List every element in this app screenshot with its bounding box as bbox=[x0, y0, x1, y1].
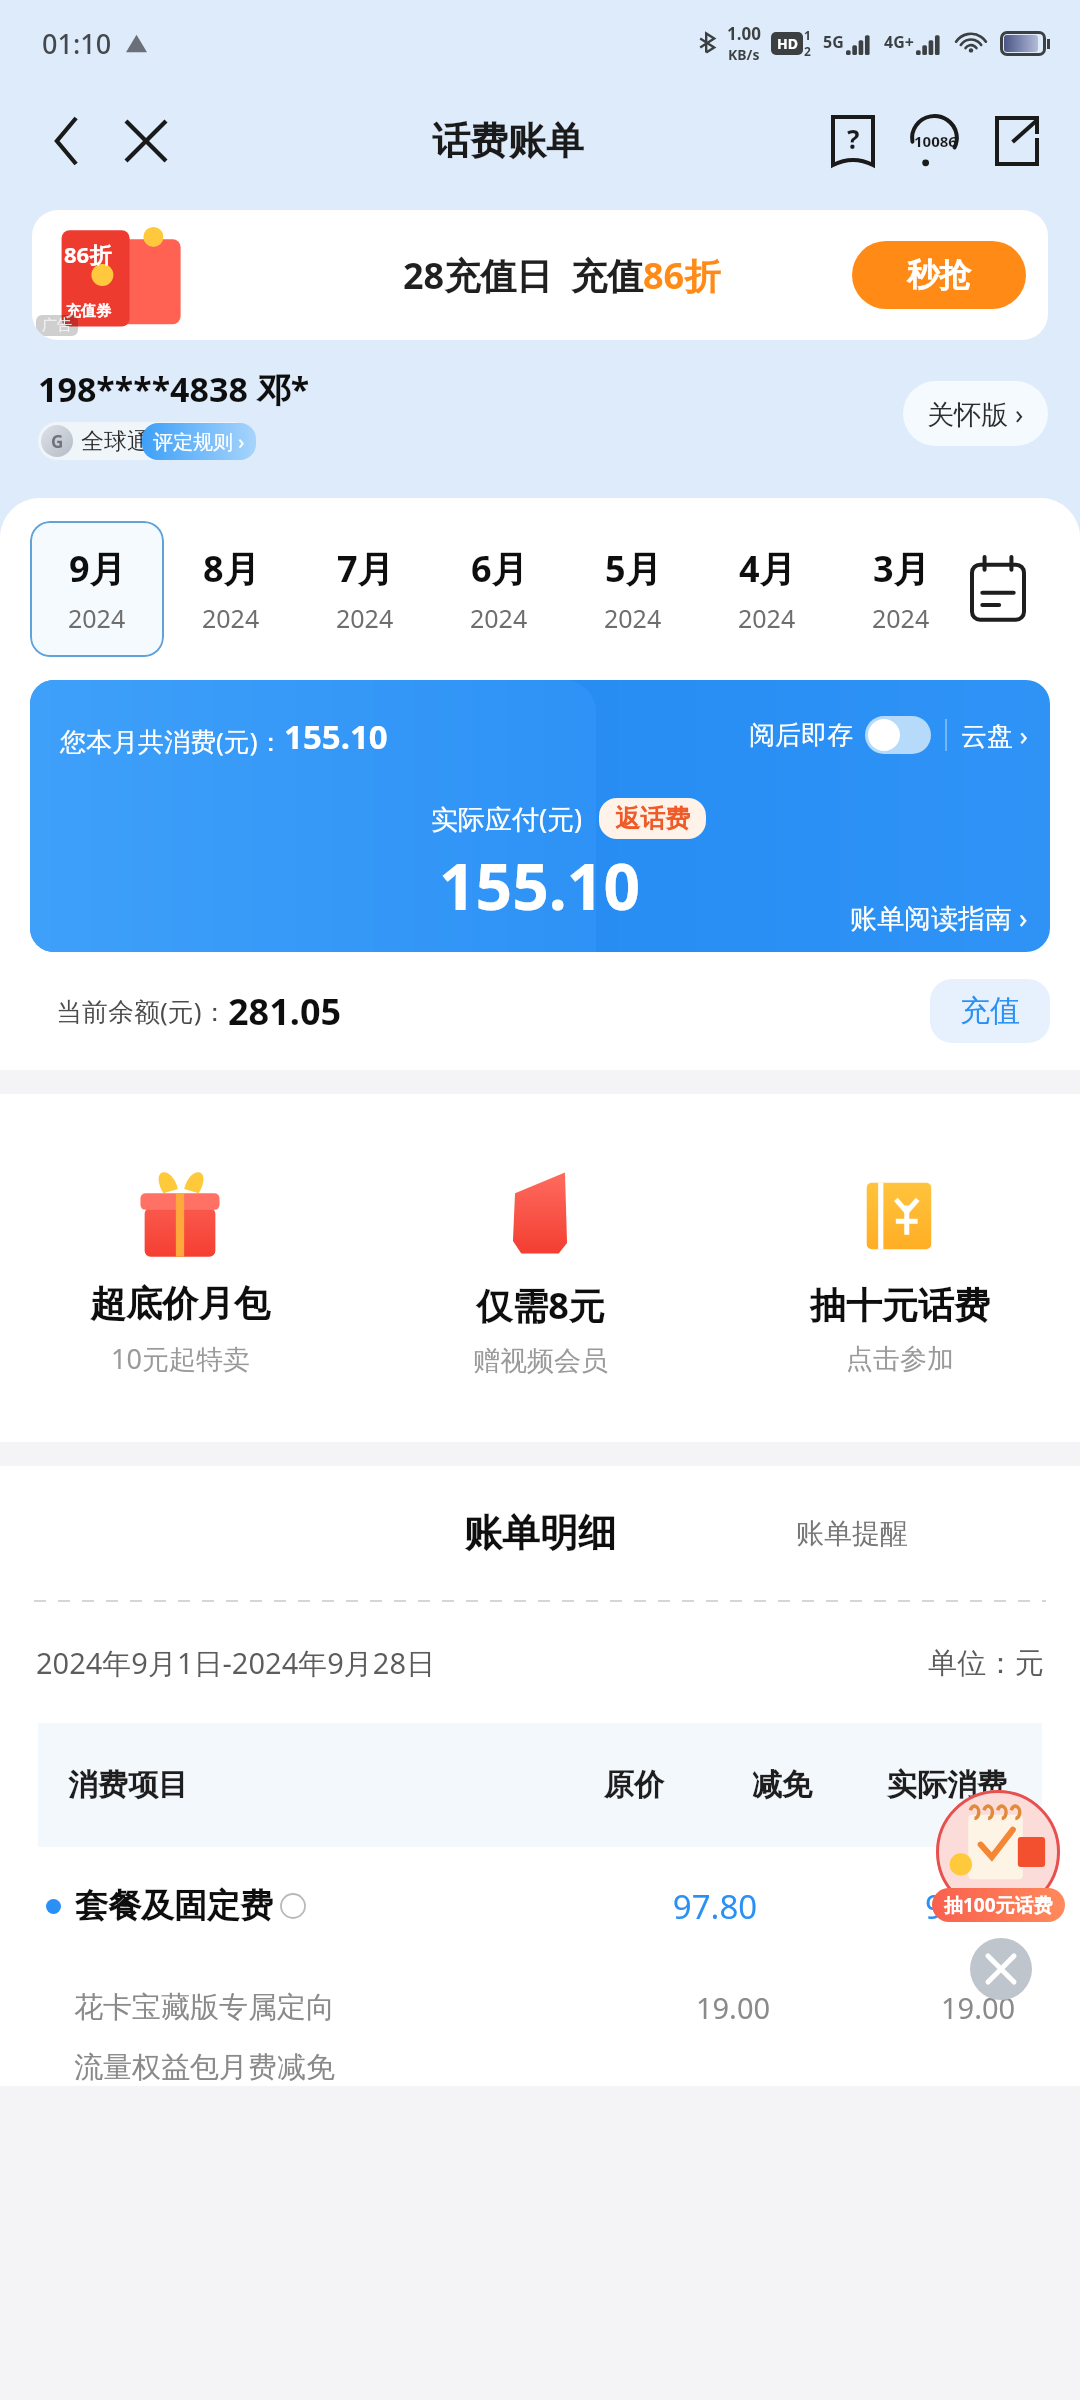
staticText: 阅后即存 bbox=[749, 719, 853, 752]
staticText: 2024 bbox=[202, 601, 260, 635]
staticText: 广告 bbox=[42, 316, 72, 335]
staticText: 9月 bbox=[69, 544, 126, 593]
button[interactable]: 秒抢 bbox=[852, 241, 1026, 309]
button[interactable]: 仅需8元 bbox=[360, 1159, 720, 1378]
staticText: 当前余额(元)： bbox=[56, 993, 228, 1029]
staticText: 2024 bbox=[470, 601, 528, 635]
button[interactable]: 86折 bbox=[32, 210, 1048, 340]
staticText: 2024 bbox=[604, 601, 662, 635]
staticText: 关怀版 › bbox=[927, 395, 1024, 432]
staticText: 3月 bbox=[873, 544, 930, 593]
staticText: 消费项目 bbox=[68, 1766, 556, 1804]
staticText: KB/s bbox=[728, 45, 760, 64]
staticText: 10086 bbox=[914, 131, 957, 151]
button[interactable]: Help bbox=[812, 100, 894, 182]
staticText: 评定规则 › bbox=[153, 428, 245, 455]
button[interactable]: 7月 bbox=[298, 521, 432, 657]
staticText: 超底价月包 bbox=[90, 1281, 270, 1326]
button[interactable]: 5月 bbox=[566, 521, 700, 657]
staticText: ? bbox=[847, 121, 860, 156]
button[interactable]: Close promotion bbox=[970, 1938, 1032, 2000]
staticText: 赠视频会员 bbox=[473, 1344, 608, 1378]
button[interactable]: Call 10086 bbox=[894, 100, 976, 182]
staticText: 198****4838 邓* bbox=[38, 366, 310, 412]
button[interactable]: Close bbox=[106, 101, 186, 181]
staticText: 155.10 bbox=[439, 842, 641, 929]
staticText: 实际应付(元) bbox=[431, 800, 583, 837]
staticText: 抽100元话费 bbox=[944, 1892, 1053, 1918]
staticText: 账单阅读指南 › bbox=[850, 899, 1028, 936]
button[interactable]: 4月 bbox=[700, 521, 834, 657]
staticText: 97.80 bbox=[925, 1884, 1010, 1929]
staticText: 秒抢 bbox=[907, 255, 971, 295]
button[interactable]: Draw 100 yuan bbox=[936, 1790, 1060, 1914]
staticText: 流量权益包月费减免 bbox=[74, 2049, 335, 2086]
button[interactable]: 6月 bbox=[432, 521, 566, 657]
staticText: 套餐及固定费 bbox=[75, 1885, 273, 1927]
button[interactable]: 账单阅读指南 › bbox=[850, 899, 1028, 936]
staticText: 实际消费 bbox=[852, 1766, 1042, 1804]
staticText: HD bbox=[777, 34, 798, 53]
staticText: 5G bbox=[823, 31, 844, 53]
button[interactable]: 抽十元话费 bbox=[720, 1161, 1080, 1376]
staticText: 抽十元话费 bbox=[810, 1283, 990, 1328]
button[interactable]: Auto save toggle bbox=[865, 716, 931, 754]
staticText: G bbox=[51, 430, 64, 453]
staticText: 7月 bbox=[337, 544, 394, 593]
staticText: 2024 bbox=[68, 601, 126, 635]
staticText: 19.00 bbox=[941, 1988, 1016, 2027]
staticText: 2 bbox=[804, 43, 811, 59]
staticText: 充值 bbox=[960, 992, 1020, 1030]
staticText: 97.80 bbox=[629, 1884, 801, 1929]
button[interactable]: 套餐及固定费 bbox=[38, 1847, 1042, 1965]
staticText: 原价 bbox=[556, 1766, 712, 1804]
staticText: 账单提醒 bbox=[796, 1516, 908, 1551]
button[interactable]: Share bbox=[976, 100, 1058, 182]
staticText: 8月 bbox=[203, 544, 260, 593]
button[interactable]: 9月 bbox=[30, 521, 164, 657]
staticText: 19.00 bbox=[649, 1988, 817, 2027]
button[interactable]: Back bbox=[26, 101, 106, 181]
staticText: 01:10 bbox=[42, 25, 112, 62]
staticText: 2024 bbox=[336, 601, 394, 635]
staticText: 点击参加 bbox=[846, 1342, 954, 1376]
staticText: 账单明细 bbox=[464, 1509, 616, 1557]
staticText: 话费账单 bbox=[432, 117, 584, 165]
staticText: 155.10 bbox=[284, 714, 388, 759]
staticText: 1.00 bbox=[727, 22, 761, 45]
staticText: 仅需8元 bbox=[476, 1281, 605, 1330]
button[interactable]: 超底价月包 bbox=[0, 1159, 360, 1377]
staticText: 28充值日 充值 bbox=[403, 251, 643, 300]
staticText: 单位：元 bbox=[928, 1645, 1044, 1682]
staticText: 5月 bbox=[605, 544, 662, 593]
staticText: 减免 bbox=[712, 1766, 852, 1804]
staticText: 2024年9月1日-2024年9月28日 bbox=[36, 1643, 435, 1683]
staticText: 6月 bbox=[471, 544, 528, 593]
staticText: 云盘 › bbox=[961, 717, 1028, 753]
staticText: 花卡宝藏版专属定向 bbox=[74, 1989, 335, 2026]
button[interactable]: Select month bbox=[956, 547, 1040, 631]
button[interactable]: 3月 bbox=[834, 521, 968, 657]
staticText: 281.05 bbox=[228, 987, 342, 1036]
staticText: 1 bbox=[804, 27, 811, 43]
button[interactable]: 8月 bbox=[164, 521, 298, 657]
button[interactable]: 评定规则 › bbox=[153, 428, 245, 455]
button[interactable]: 关怀版 › bbox=[927, 395, 1024, 432]
button[interactable]: 云盘 › bbox=[961, 717, 1028, 753]
staticText: 86折 bbox=[64, 239, 112, 269]
staticText: 全球通银卡 bbox=[81, 427, 196, 456]
staticText: 2024 bbox=[738, 601, 796, 635]
button[interactable]: 充值 bbox=[960, 992, 1020, 1030]
staticText: 您本月共消费(元)： bbox=[60, 723, 284, 759]
staticText: 2024 bbox=[872, 601, 930, 635]
staticText: 充值券 bbox=[66, 302, 111, 321]
staticText: 4月 bbox=[739, 544, 796, 593]
staticText: 4G+ bbox=[884, 31, 914, 53]
staticText: 返话费 bbox=[615, 803, 690, 834]
staticText: 10元起特卖 bbox=[111, 1340, 250, 1377]
staticText: 86折 bbox=[643, 251, 721, 300]
button[interactable]: 返话费 bbox=[615, 803, 690, 834]
button[interactable]: 账单提醒 bbox=[796, 1516, 908, 1551]
